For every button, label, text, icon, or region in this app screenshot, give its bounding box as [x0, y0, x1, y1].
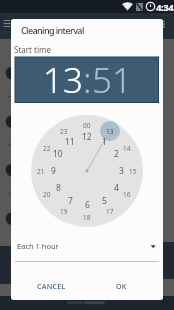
staticText: 51 [92, 56, 132, 102]
staticText: OK [116, 281, 127, 291]
staticText: 4 [114, 182, 119, 193]
staticText: 16 [123, 190, 131, 199]
staticText: Start time [14, 44, 51, 55]
staticText: 9 [51, 165, 56, 176]
staticText: 17 [106, 207, 114, 216]
button[interactable]: CANCEL [28, 276, 74, 296]
staticText: 5 [102, 195, 107, 206]
button[interactable]: OK [105, 276, 137, 296]
staticText: 3 [119, 165, 124, 176]
staticText: 20 [43, 190, 51, 199]
staticText: 21 [37, 167, 45, 176]
staticText: 8 [56, 182, 61, 193]
staticText: 00 [83, 121, 91, 130]
button[interactable]: Each 1 hour [11, 238, 163, 255]
staticText: 22 [43, 144, 51, 153]
staticText: 6 [85, 199, 90, 210]
staticText: 1 [102, 136, 107, 147]
staticText: 13 [106, 127, 114, 136]
staticText: 12 [82, 131, 92, 142]
staticText: CANCEL [37, 281, 66, 291]
staticText: Cleaning interval [21, 24, 84, 36]
staticText: 11 [65, 136, 75, 147]
staticText: 4:34 [156, 1, 174, 14]
staticText: 14 [123, 144, 131, 153]
staticText: 18 [83, 213, 91, 222]
button[interactable]: 51 [92, 56, 132, 102]
staticText: 23 [60, 127, 68, 136]
staticText: 2 [114, 148, 119, 159]
button[interactable]: 13 [43, 56, 83, 102]
staticText: 10 [53, 148, 63, 159]
staticText: : [83, 56, 92, 102]
staticText: 19 [60, 207, 68, 216]
staticText: Each 1 hour [17, 241, 59, 251]
staticText: 7 [68, 195, 73, 206]
staticText: 13 [43, 56, 83, 102]
staticText: 15 [129, 167, 137, 176]
